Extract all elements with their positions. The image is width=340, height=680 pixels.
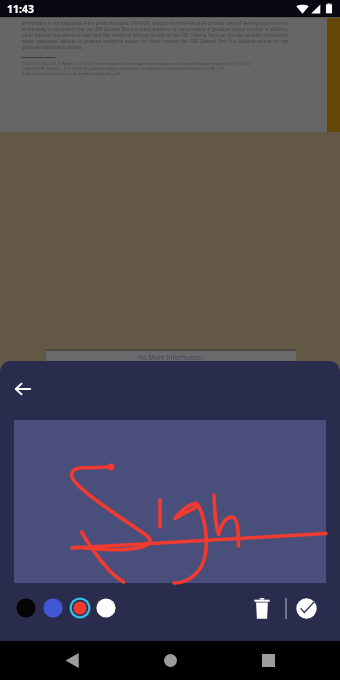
- button[interactable]: Recents: [250, 642, 286, 678]
- staticText: 3 The complete citation list is in the h…: [22, 71, 122, 76]
- button[interactable]: Pen colour: [93, 595, 119, 621]
- button[interactable]: Back: [6, 372, 40, 406]
- button[interactable]: Pen colour: [40, 595, 66, 621]
- staticText: information is not described at the pred…: [22, 20, 288, 50]
- button[interactable]: Delete: [245, 591, 279, 625]
- button[interactable]: Pen colour: [67, 595, 93, 621]
- button[interactable]: No More Information: [46, 349, 296, 363]
- button[interactable]: Confirm: [289, 591, 323, 625]
- button[interactable]: Back: [54, 642, 90, 678]
- staticText: No More Information: [138, 353, 204, 362]
- staticText: 11:43: [7, 2, 34, 16]
- staticText: 1 Graves, E., Raine, M., & Walters, S. I…: [22, 61, 251, 66]
- staticText: 2 Wilson, K. M., & Powers, D. E. (1999).…: [22, 66, 225, 71]
- button[interactable]: Home: [152, 642, 188, 678]
- button[interactable]: Pen colour: [13, 595, 39, 621]
